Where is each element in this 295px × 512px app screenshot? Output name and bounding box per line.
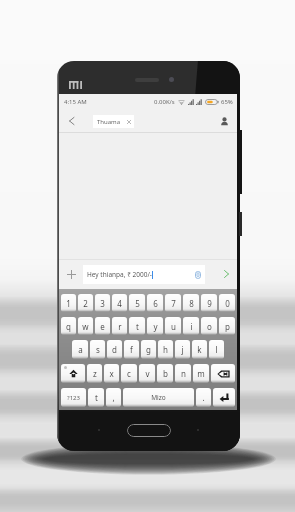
button[interactable]: Back <box>63 113 79 129</box>
staticText: Mizo <box>151 393 166 402</box>
staticText: j <box>181 344 184 355</box>
staticText: . <box>202 392 205 403</box>
button[interactable]: 9 <box>201 294 217 312</box>
button[interactable]: b <box>157 364 173 383</box>
button[interactable]: 7 <box>165 294 181 312</box>
staticText: g <box>146 344 151 355</box>
staticText: q <box>66 321 71 332</box>
staticText: o <box>207 321 212 332</box>
staticText: , <box>112 392 115 403</box>
button[interactable]: Hey thianpa, ₹ 2000/- <box>83 265 205 284</box>
button[interactable]: i <box>183 317 199 335</box>
button[interactable]: 1 <box>61 294 76 312</box>
staticText: z <box>93 368 97 379</box>
button[interactable]: 2 <box>78 294 93 312</box>
button[interactable]: ?123 <box>61 388 86 407</box>
button[interactable]: k <box>192 340 207 359</box>
staticText: 2 <box>83 298 88 309</box>
staticText: 3 <box>100 298 105 309</box>
button[interactable]: Thuama <box>93 115 134 128</box>
staticText: r <box>118 321 122 332</box>
button[interactable]: 6 <box>147 294 163 312</box>
staticText: 1 <box>66 298 71 309</box>
staticText: n <box>181 368 186 379</box>
button[interactable]: m <box>193 364 209 383</box>
staticText: k <box>197 344 202 355</box>
button[interactable]: g <box>141 340 156 359</box>
staticText: s <box>96 344 100 355</box>
button[interactable]: Enter <box>213 388 235 407</box>
staticText: 5 <box>135 298 140 309</box>
button[interactable]: , <box>106 388 121 407</box>
button[interactable]: Mizo <box>123 388 194 407</box>
staticText: h <box>163 344 168 355</box>
staticText: f <box>130 344 133 355</box>
button[interactable]: 8 <box>183 294 199 312</box>
button[interactable]: s <box>90 340 105 359</box>
button[interactable]: t <box>129 317 145 335</box>
staticText: Thuama <box>97 118 121 126</box>
staticText: 4:15 AM <box>64 98 87 106</box>
staticText: v <box>145 368 150 379</box>
button[interactable]: Backspace <box>211 364 235 383</box>
button[interactable]: . <box>196 388 211 407</box>
button[interactable]: u <box>165 317 181 335</box>
staticText: i <box>190 321 193 332</box>
staticText: 0 <box>225 298 230 309</box>
button[interactable]: j <box>175 340 190 359</box>
staticText: x <box>109 368 114 379</box>
staticText: t <box>136 321 139 332</box>
button[interactable]: z <box>87 364 102 383</box>
button[interactable]: q <box>61 317 76 335</box>
staticText: b <box>163 368 168 379</box>
button[interactable]: Attach file <box>192 269 203 280</box>
staticText: y <box>153 321 158 332</box>
button[interactable]: Send <box>218 266 234 282</box>
staticText: ?123 <box>67 394 80 402</box>
button[interactable]: p <box>219 317 235 335</box>
staticText: l <box>215 344 218 355</box>
button[interactable]: a <box>72 340 88 359</box>
staticText: 0.00K/s <box>154 98 175 106</box>
button[interactable]: 3 <box>95 294 110 312</box>
staticText: 65% <box>221 98 233 106</box>
button[interactable]: t <box>88 388 104 407</box>
staticText: e <box>100 321 105 332</box>
button[interactable]: 0 <box>219 294 235 312</box>
button[interactable]: n <box>175 364 191 383</box>
button[interactable]: e <box>95 317 110 335</box>
button[interactable]: 5 <box>129 294 145 312</box>
button[interactable]: h <box>158 340 173 359</box>
button[interactable]: r <box>112 317 127 335</box>
button[interactable]: l <box>209 340 224 359</box>
staticText: 4 <box>117 298 122 309</box>
staticText: 6 <box>153 298 158 309</box>
button[interactable]: 4 <box>112 294 127 312</box>
button[interactable]: f <box>124 340 139 359</box>
button[interactable]: v <box>139 364 155 383</box>
button[interactable]: Shift <box>61 364 85 383</box>
button[interactable]: Add attachment <box>62 265 80 283</box>
staticText: 9 <box>207 298 212 309</box>
staticText: c <box>127 368 131 379</box>
button[interactable]: Contacts <box>216 113 232 129</box>
button[interactable]: o <box>201 317 217 335</box>
button[interactable]: y <box>147 317 163 335</box>
button[interactable]: d <box>107 340 122 359</box>
staticText: d <box>112 344 117 355</box>
staticText: p <box>225 321 230 332</box>
button[interactable]: c <box>121 364 137 383</box>
staticText: t <box>95 392 98 403</box>
staticText: w <box>82 321 89 332</box>
staticText: Hey thianpa, ₹ 2000/- <box>87 270 152 279</box>
staticText: m <box>197 368 205 379</box>
staticText: a <box>78 344 83 355</box>
button[interactable]: x <box>104 364 119 383</box>
staticText: u <box>171 321 176 332</box>
staticText: 7 <box>171 298 176 309</box>
button[interactable]: w <box>78 317 93 335</box>
staticText: 8 <box>189 298 194 309</box>
